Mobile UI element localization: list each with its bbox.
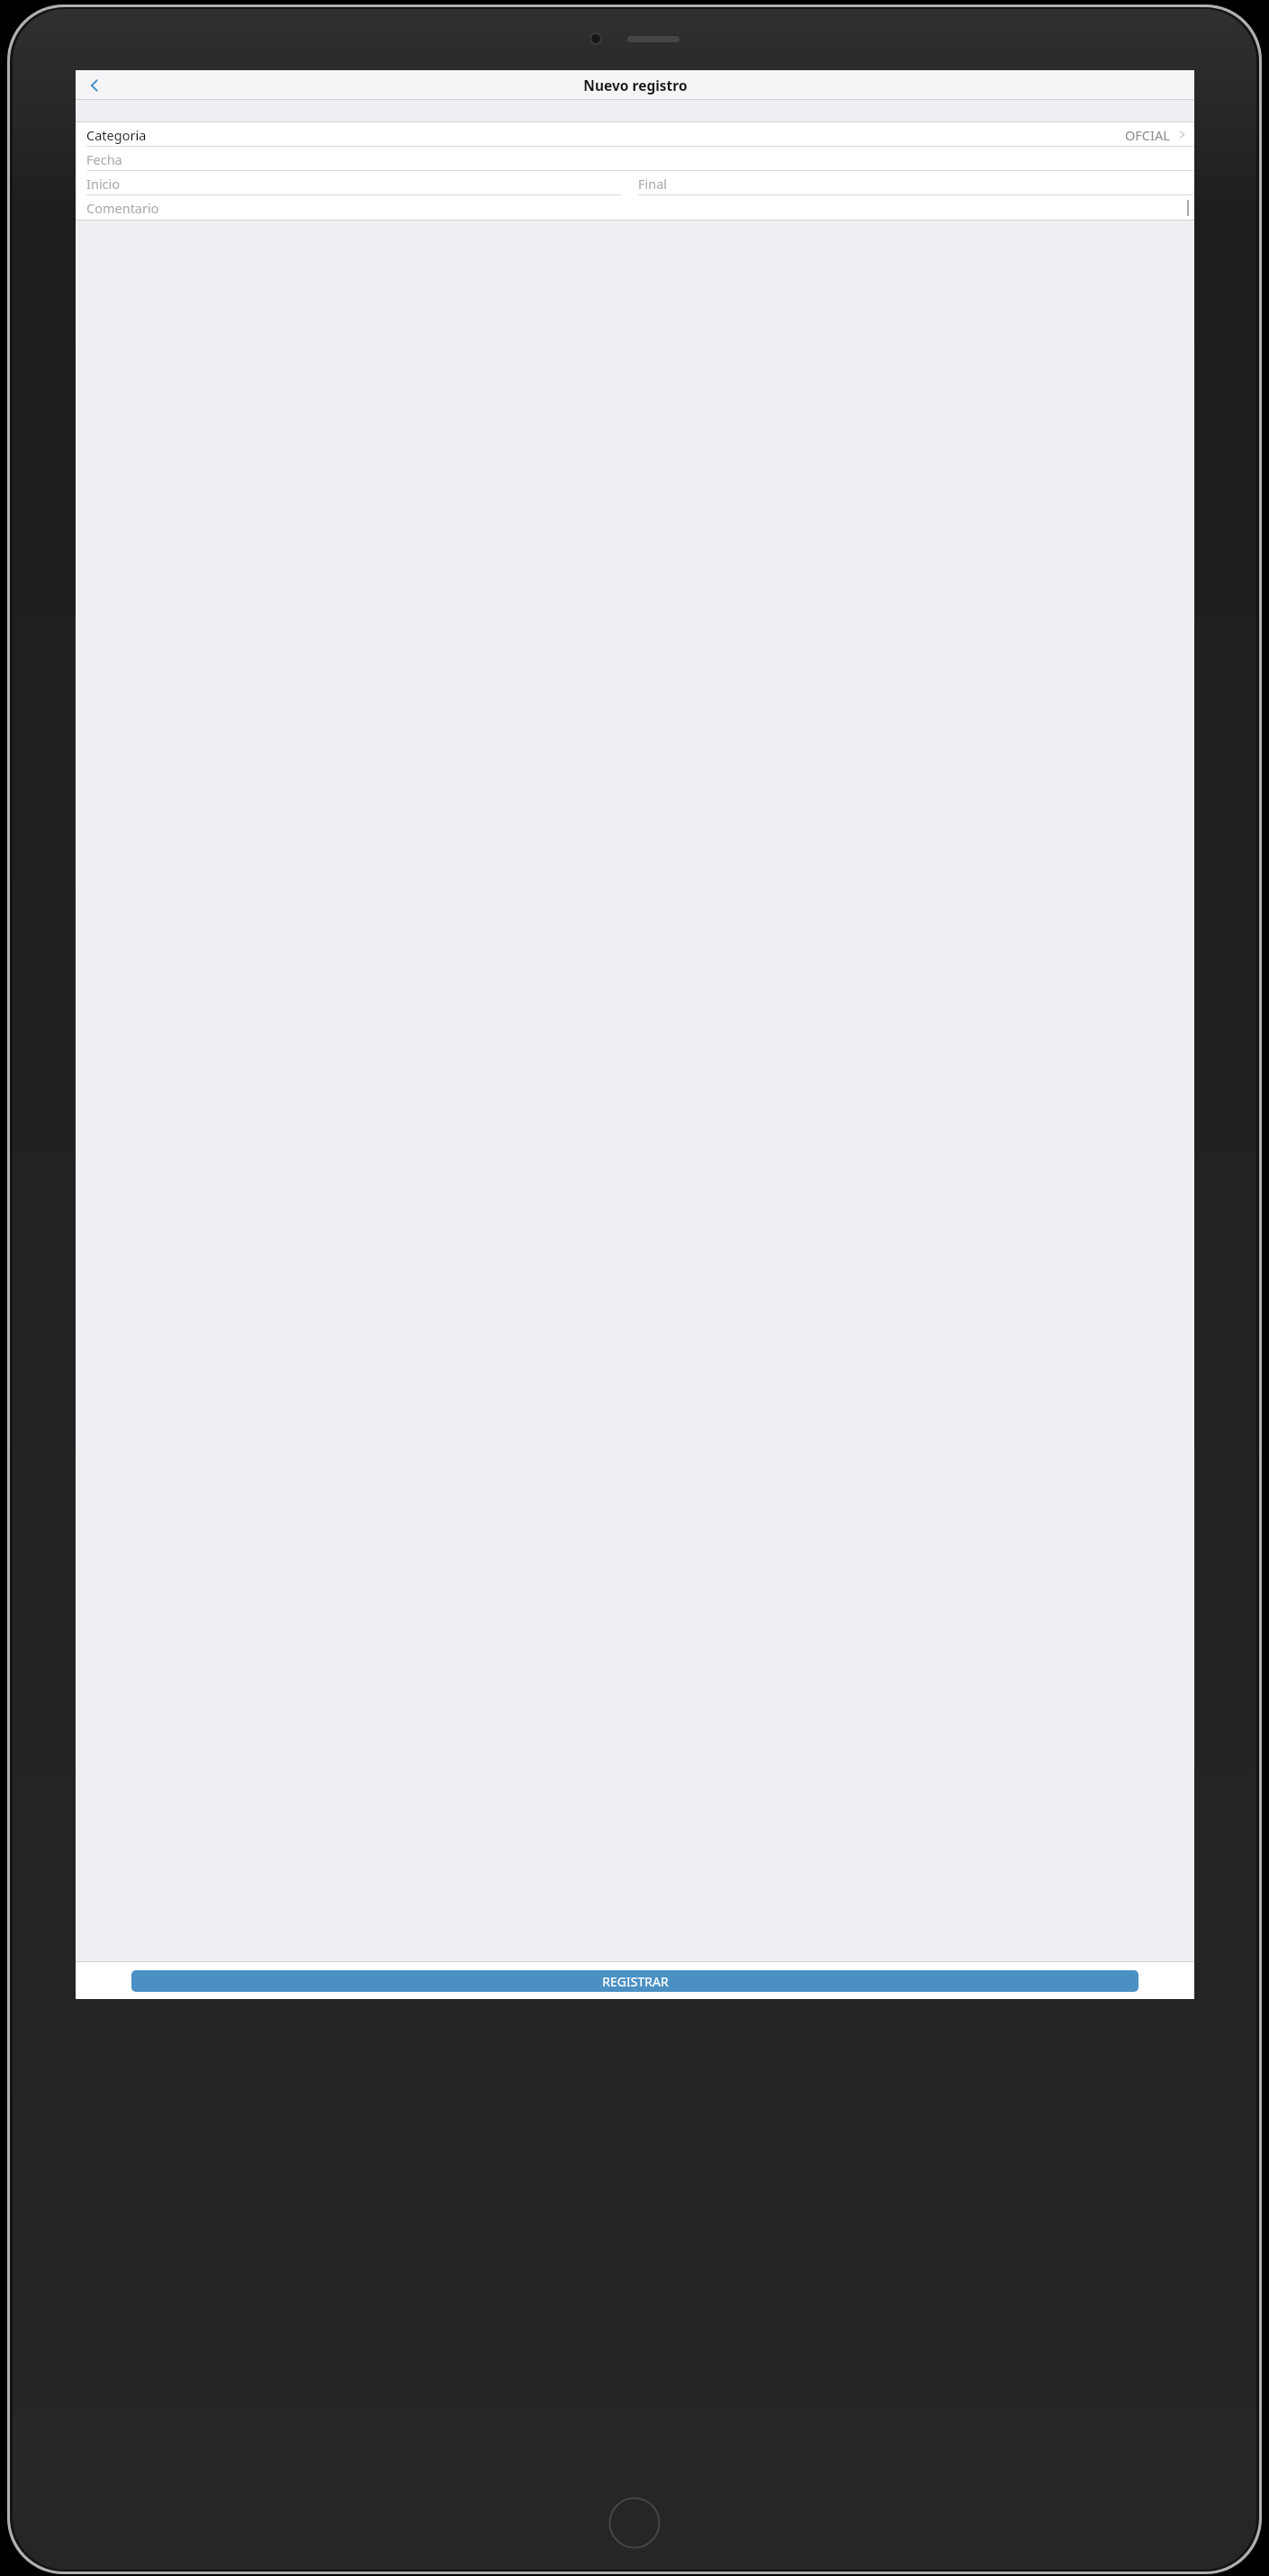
staticText: Inicio	[86, 175, 121, 193]
staticText: Fecha	[86, 150, 122, 168]
staticText: OFCIAL	[1125, 126, 1170, 144]
staticText: REGISTRAR	[602, 1973, 669, 1990]
button[interactable]: REGISTRAR	[131, 1970, 1138, 1992]
button[interactable]: Inicio	[76, 171, 634, 195]
button[interactable]: Back	[79, 70, 110, 100]
button[interactable]: Fecha	[76, 147, 1194, 171]
button[interactable]: Comentario	[76, 195, 1194, 220]
staticText: Categoria	[86, 126, 147, 144]
staticText: Nuevo registro	[583, 76, 688, 95]
staticText: Final	[638, 175, 668, 193]
staticText: Comentario	[86, 199, 159, 217]
button[interactable]: Categoria	[76, 122, 1194, 147]
button[interactable]: Final	[634, 171, 1194, 195]
